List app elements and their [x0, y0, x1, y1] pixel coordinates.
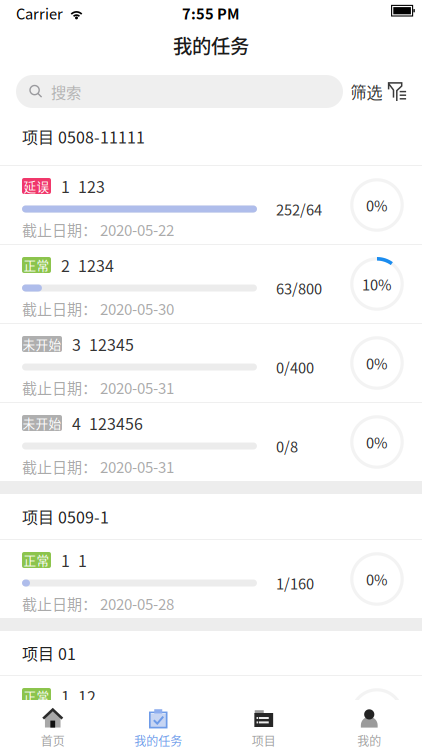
staticText: 0%: [366, 704, 388, 726]
staticText: 正常: [23, 687, 49, 705]
button[interactable]: 我的: [316, 700, 422, 750]
button[interactable]: 未开始: [0, 324, 422, 402]
button[interactable]: 我的任务: [105, 700, 211, 750]
staticText: 项目 0509-1: [22, 505, 109, 528]
staticText: 首页: [41, 732, 65, 749]
staticText: 截止日期： 2020-05-30: [22, 298, 174, 319]
staticText: 我的任务: [173, 31, 249, 59]
staticText: 我的任务: [134, 732, 182, 749]
staticText: 7:55 PM: [182, 2, 240, 24]
staticText: 0%: [366, 568, 388, 590]
staticText: 项目 01: [22, 641, 76, 665]
button[interactable]: 筛选: [348, 75, 410, 108]
staticText: 延误: [23, 177, 49, 195]
button[interactable]: 搜索: [16, 75, 343, 108]
button[interactable]: 正常: [0, 245, 422, 323]
staticText: 0/8: [276, 435, 298, 457]
staticText: 0%: [366, 194, 388, 216]
staticText: 1 12: [61, 684, 96, 708]
staticText: 未开始: [22, 335, 61, 353]
staticText: 搜索: [51, 80, 81, 103]
button[interactable]: 项目: [211, 700, 316, 750]
staticText: 1 123: [61, 174, 105, 198]
button[interactable]: 首页: [0, 700, 105, 750]
staticText: 截止日期： 2020-05-28: [22, 729, 174, 750]
staticText: Carrier: [16, 2, 63, 24]
staticText: 1 1: [61, 548, 87, 572]
staticText: 0%: [366, 352, 388, 374]
staticText: 4 123456: [72, 411, 143, 435]
button[interactable]: 正常: [0, 676, 422, 750]
staticText: 筛选: [350, 80, 382, 103]
staticText: 我的: [357, 732, 381, 749]
staticText: 正常: [23, 551, 49, 569]
staticText: 10%: [362, 273, 392, 295]
button[interactable]: 延误: [0, 166, 422, 244]
button[interactable]: 正常: [0, 540, 422, 618]
staticText: 截止日期： 2020-05-31: [22, 456, 174, 477]
staticText: 2 1234: [61, 253, 114, 277]
staticText: 项目 0508-11111: [22, 125, 145, 148]
button[interactable]: 未开始: [0, 403, 422, 481]
staticText: 截止日期： 2020-05-31: [22, 377, 174, 398]
staticText: 0%: [366, 431, 388, 453]
staticText: 项目: [252, 732, 276, 749]
staticText: 0/400: [276, 356, 314, 378]
staticText: 正常: [23, 256, 49, 274]
staticText: 未开始: [22, 414, 61, 432]
staticText: 63/800: [276, 277, 322, 299]
staticText: 252/64: [276, 198, 322, 220]
staticText: 3 12345: [72, 332, 134, 356]
staticText: 截止日期： 2020-05-22: [22, 219, 174, 240]
staticText: 截止日期： 2020-05-28: [22, 593, 174, 614]
staticText: 1/160: [276, 572, 314, 594]
